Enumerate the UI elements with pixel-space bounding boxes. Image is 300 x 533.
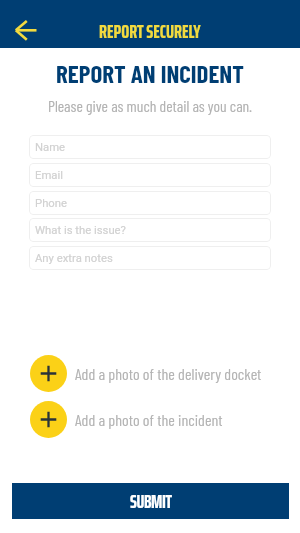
button[interactable]: Any extra notes: [29, 246, 271, 270]
staticText: Any extra notes: [35, 252, 113, 265]
button[interactable]: Add a photo of the delivery docket: [30, 355, 272, 392]
button[interactable]: What is the issue?: [29, 218, 271, 242]
staticText: Phone: [35, 197, 68, 210]
staticText: Please give as much detail as you can.: [0, 96, 300, 115]
button[interactable]: Back: [12, 16, 40, 44]
button[interactable]: Add a photo of the incident: [30, 401, 272, 438]
staticText: Add a photo of the delivery docket: [75, 364, 262, 383]
staticText: Name: [35, 141, 66, 154]
button[interactable]: SUBMIT: [12, 483, 289, 519]
staticText: What is the issue?: [35, 224, 126, 237]
staticText: Add a photo of the incident: [75, 410, 223, 429]
staticText: REPORT SECURELY: [99, 16, 201, 46]
staticText: SUBMIT: [130, 487, 172, 516]
button[interactable]: Email: [29, 163, 271, 187]
button[interactable]: Phone: [29, 191, 271, 215]
staticText: Email: [35, 169, 63, 182]
staticText: REPORT AN INCIDENT: [0, 58, 300, 88]
button[interactable]: Name: [29, 135, 271, 159]
